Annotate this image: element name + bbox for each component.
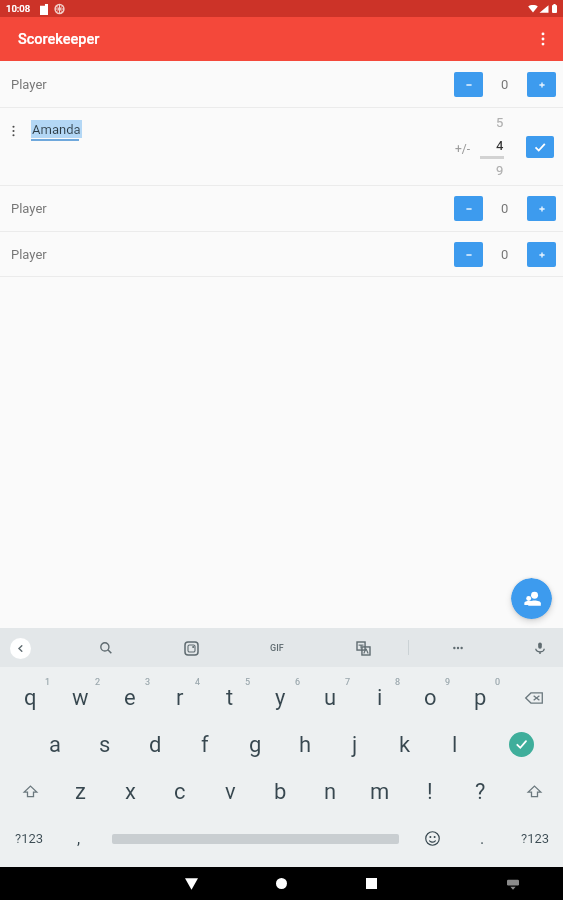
staticText: h (299, 732, 312, 758)
button[interactable]: translate (350, 635, 376, 661)
staticText: ? (475, 779, 486, 805)
staticText: Player (11, 77, 47, 92)
button[interactable]: ?123 (507, 815, 563, 862)
button[interactable]: k (380, 721, 430, 768)
button[interactable]: Back (168, 867, 214, 900)
staticText: j (352, 732, 358, 758)
button[interactable]: z (55, 768, 105, 815)
staticText: o (424, 685, 437, 711)
staticText: 0 (501, 201, 509, 216)
button[interactable]: Hide keyboard (500, 871, 526, 897)
button[interactable]: g (230, 721, 280, 768)
staticText: a (49, 732, 61, 758)
button[interactable]: e (105, 674, 155, 721)
button[interactable]: Amanda (31, 120, 82, 138)
staticText: v (225, 779, 236, 805)
button[interactable]: u (305, 674, 355, 721)
button[interactable]: Shift (5, 768, 55, 815)
button[interactable]: q (5, 674, 55, 721)
button[interactable]: Close toolbar (10, 638, 31, 659)
button[interactable]: Score picker (464, 112, 504, 182)
button[interactable]: , (54, 815, 104, 862)
staticText: p (474, 685, 487, 711)
button[interactable]: t (205, 674, 255, 721)
button[interactable]: Enter (480, 721, 563, 768)
button[interactable]: . (457, 815, 507, 862)
button[interactable]: j (330, 721, 380, 768)
staticText: t (226, 685, 234, 711)
staticText: ! (427, 779, 433, 805)
button[interactable]: p (455, 674, 505, 721)
staticText: m (370, 779, 390, 805)
button[interactable]: Decrease score (454, 196, 483, 221)
button[interactable]: i (355, 674, 405, 721)
button[interactable]: c (155, 768, 205, 815)
button[interactable]: ? (455, 768, 505, 815)
staticText: 6 (295, 677, 301, 688)
button[interactable]: b (255, 768, 305, 815)
button[interactable]: v (205, 768, 255, 815)
button[interactable]: mic (527, 635, 553, 661)
staticText: 5 (496, 115, 504, 130)
staticText: 9 (496, 163, 504, 178)
button[interactable]: Increase score (527, 242, 556, 267)
button[interactable]: Space (104, 815, 407, 862)
button[interactable]: f (180, 721, 230, 768)
button[interactable]: s (80, 721, 130, 768)
button[interactable]: Home (258, 867, 304, 900)
staticText: 5 (245, 677, 251, 688)
button[interactable]: Emoji (407, 815, 457, 862)
staticText: e (124, 685, 136, 711)
button[interactable]: a (30, 721, 80, 768)
staticText: q (24, 685, 37, 711)
staticText: z (75, 779, 86, 805)
staticText: Amanda (32, 122, 81, 137)
button[interactable]: l (430, 721, 480, 768)
button[interactable]: Player (0, 61, 563, 108)
staticText: 4 (195, 677, 201, 688)
button[interactable]: Shift (505, 768, 563, 815)
staticText: l (452, 732, 458, 758)
staticText: r (176, 685, 184, 711)
staticText: d (149, 732, 162, 758)
staticText: ?123 (521, 831, 550, 846)
staticText: s (99, 732, 111, 758)
staticText: GIF (270, 643, 284, 654)
button[interactable]: y (255, 674, 305, 721)
staticText: u (324, 685, 337, 711)
staticText: +/- (455, 142, 471, 156)
button[interactable]: ?123 (4, 815, 54, 862)
staticText: 1 (45, 677, 51, 688)
button[interactable]: d (130, 721, 180, 768)
button[interactable]: Player (0, 232, 563, 277)
button[interactable]: Backspace (505, 674, 563, 721)
staticText: g (249, 732, 262, 758)
staticText: Scorekeeper (18, 31, 100, 48)
button[interactable]: m (355, 768, 405, 815)
button[interactable]: Confirm name (526, 136, 554, 158)
button[interactable]: w (55, 674, 105, 721)
button[interactable]: h (280, 721, 330, 768)
button[interactable]: ! (405, 768, 455, 815)
button[interactable]: Increase score (527, 196, 556, 221)
button[interactable]: Player options (5, 123, 21, 139)
button[interactable]: search (93, 635, 119, 661)
button[interactable]: sticker (178, 635, 204, 661)
button[interactable]: Increase score (527, 72, 556, 97)
button[interactable]: n (305, 768, 355, 815)
button[interactable]: Player (0, 186, 563, 232)
button[interactable]: Decrease score (454, 72, 483, 97)
button[interactable]: r (155, 674, 205, 721)
staticText: i (377, 685, 383, 711)
button[interactable]: more (445, 635, 471, 661)
button[interactable]: o (405, 674, 455, 721)
button[interactable]: x (105, 768, 155, 815)
button[interactable]: Recent apps (348, 867, 394, 900)
staticText: f (201, 732, 209, 758)
button[interactable]: gif (264, 635, 290, 661)
button[interactable]: Decrease score (454, 242, 483, 267)
button[interactable]: Add player (511, 578, 552, 619)
staticText: 0 (501, 77, 509, 92)
staticText: 0 (501, 247, 509, 262)
button[interactable]: More options (523, 19, 563, 59)
